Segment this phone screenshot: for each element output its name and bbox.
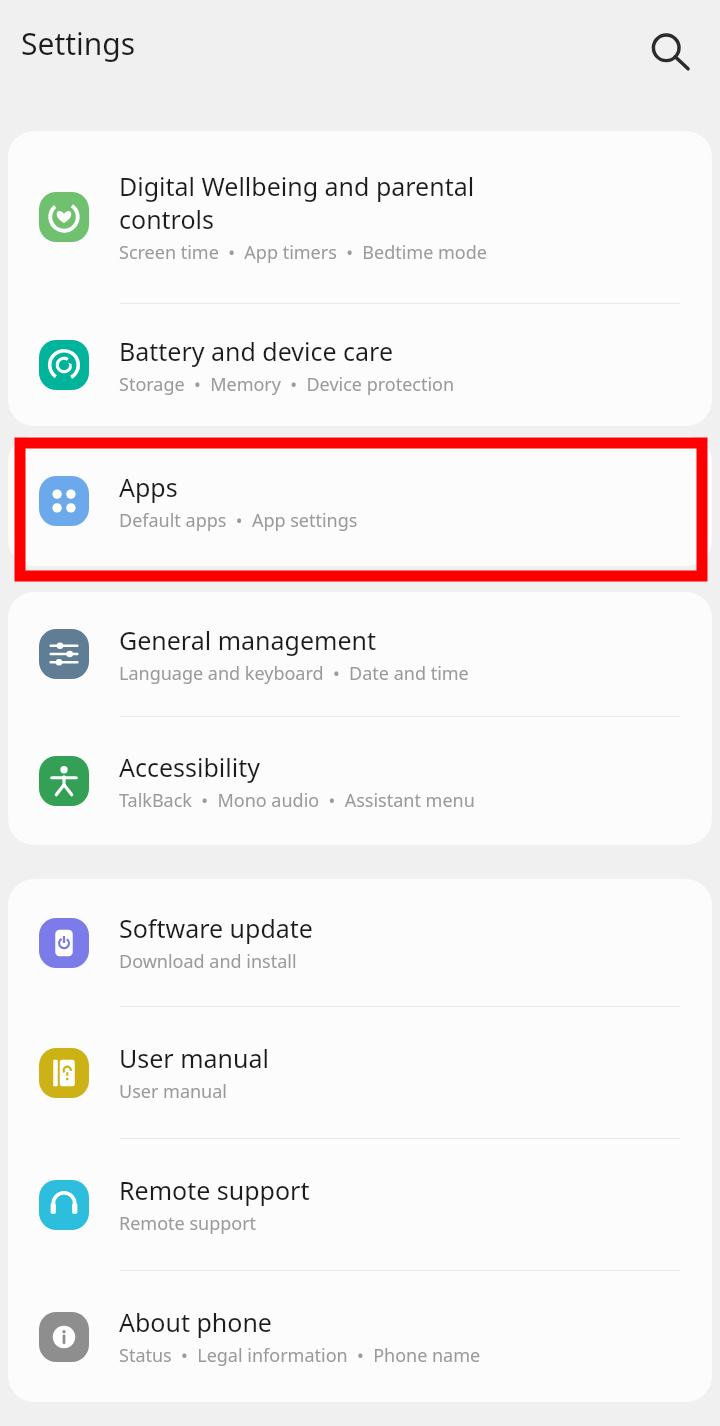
staticText: About phone: [119, 1305, 272, 1339]
button[interactable]: Battery and device care: [8, 304, 712, 426]
staticText: Status • Legal information • Phone name: [119, 1343, 481, 1368]
staticText: Settings: [21, 23, 136, 64]
staticText: TalkBack • Mono audio • Assistant menu: [119, 788, 475, 813]
button[interactable]: Search: [628, 10, 712, 94]
button[interactable]: Digital Wellbeing and parental controls: [8, 131, 712, 303]
staticText: Software update: [119, 911, 313, 945]
button[interactable]: About phone: [8, 1271, 712, 1402]
staticText: Apps: [119, 470, 178, 504]
staticText: Remote support: [119, 1173, 310, 1207]
staticText: User manual: [119, 1079, 227, 1104]
staticText: Language and keyboard • Date and time: [119, 661, 469, 686]
staticText: Download and install: [119, 949, 297, 974]
staticText: Storage • Memory • Device protection: [119, 372, 455, 397]
button[interactable]: General management: [8, 592, 712, 716]
button[interactable]: Remote support: [8, 1139, 712, 1270]
button[interactable]: Accessibility: [8, 717, 712, 845]
staticText: Accessibility: [119, 750, 260, 784]
button[interactable]: Software update: [8, 879, 712, 1006]
staticText: Remote support: [119, 1211, 257, 1236]
staticText: Screen time • App timers • Bedtime mode: [119, 240, 487, 265]
staticText: Digital Wellbeing and parental controls: [119, 169, 475, 236]
staticText: Default apps • App settings: [119, 508, 358, 533]
staticText: User manual: [119, 1041, 269, 1075]
button[interactable]: User manual: [8, 1007, 712, 1138]
staticText: Battery and device care: [119, 334, 394, 368]
staticText: General management: [119, 623, 376, 657]
button[interactable]: Apps: [8, 436, 712, 566]
